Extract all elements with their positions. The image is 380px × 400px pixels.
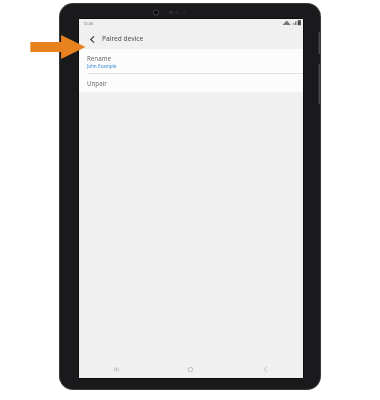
button[interactable]: Unpair	[79, 74, 303, 92]
staticText: Paired device	[102, 34, 144, 43]
button[interactable]: Rename	[79, 49, 303, 73]
button[interactable]: Home	[153, 361, 228, 378]
staticText: Unpair	[87, 79, 107, 87]
button[interactable]: Recent apps	[79, 361, 153, 378]
staticText: Rename	[87, 54, 111, 62]
staticText: John Example	[87, 63, 117, 69]
staticText: 12:45	[83, 21, 94, 26]
button[interactable]: Back	[85, 32, 99, 46]
